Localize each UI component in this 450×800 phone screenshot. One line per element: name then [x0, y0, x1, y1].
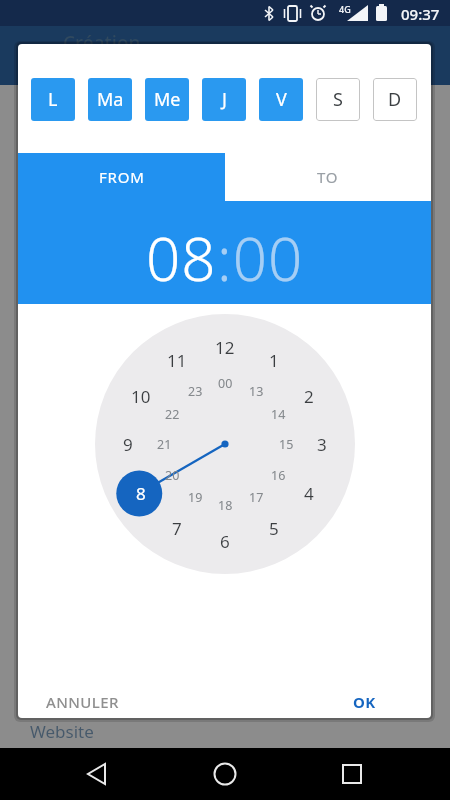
staticText: 16	[271, 467, 286, 484]
staticText: 15	[279, 436, 294, 453]
staticText: ANNULER	[46, 692, 119, 712]
staticText: 08	[146, 217, 217, 299]
staticText: 13	[249, 383, 264, 400]
staticText: 5	[269, 517, 279, 540]
staticText: J	[222, 87, 227, 112]
staticText: 10	[131, 385, 151, 408]
button[interactable]: Me	[145, 78, 189, 121]
staticText: :00	[217, 217, 304, 299]
button[interactable]: L	[31, 78, 75, 121]
staticText: L	[48, 87, 58, 112]
staticText: 3	[317, 433, 327, 456]
staticText: 4G	[339, 3, 351, 15]
staticText: 17	[249, 489, 264, 506]
button[interactable]	[205, 754, 245, 794]
button[interactable]: S	[316, 78, 360, 121]
staticText: V	[276, 87, 287, 112]
button[interactable]: TO	[225, 153, 431, 201]
button[interactable]: J	[202, 78, 246, 121]
button[interactable]: ANNULER	[34, 683, 130, 718]
staticText: 8	[136, 482, 146, 505]
staticText: Ma	[97, 87, 124, 112]
staticText: 9	[123, 433, 133, 456]
staticText: 1	[269, 349, 279, 372]
staticText: 19	[188, 489, 203, 506]
staticText: D	[388, 87, 402, 112]
staticText: 22	[165, 406, 180, 423]
staticText: 11	[167, 349, 187, 372]
staticText: 21	[157, 436, 172, 453]
staticText: 6	[220, 530, 230, 553]
staticText: 2	[304, 385, 314, 408]
button[interactable]	[77, 754, 117, 794]
staticText: 00	[218, 375, 233, 392]
staticText: FROM	[99, 167, 145, 187]
staticText: 14	[271, 406, 286, 423]
staticText: OK	[353, 692, 376, 712]
button[interactable]: D	[373, 78, 417, 121]
staticText: Website	[30, 720, 94, 743]
button[interactable]: Ma	[88, 78, 132, 121]
staticText: 12	[215, 336, 235, 359]
staticText: 09:37	[401, 4, 440, 24]
staticText: 4	[304, 482, 314, 505]
staticText: S	[333, 87, 343, 112]
button[interactable]	[332, 754, 372, 794]
staticText: 7	[172, 517, 182, 540]
button[interactable]: OK	[334, 683, 394, 718]
button[interactable]: V	[259, 78, 303, 121]
staticText: Me	[154, 87, 181, 112]
button[interactable]: FROM	[18, 153, 225, 201]
staticText: Création	[63, 30, 141, 56]
staticText: 23	[188, 383, 203, 400]
staticText: 20	[165, 467, 180, 484]
staticText: TO	[317, 167, 339, 187]
staticText: 18	[218, 497, 233, 514]
